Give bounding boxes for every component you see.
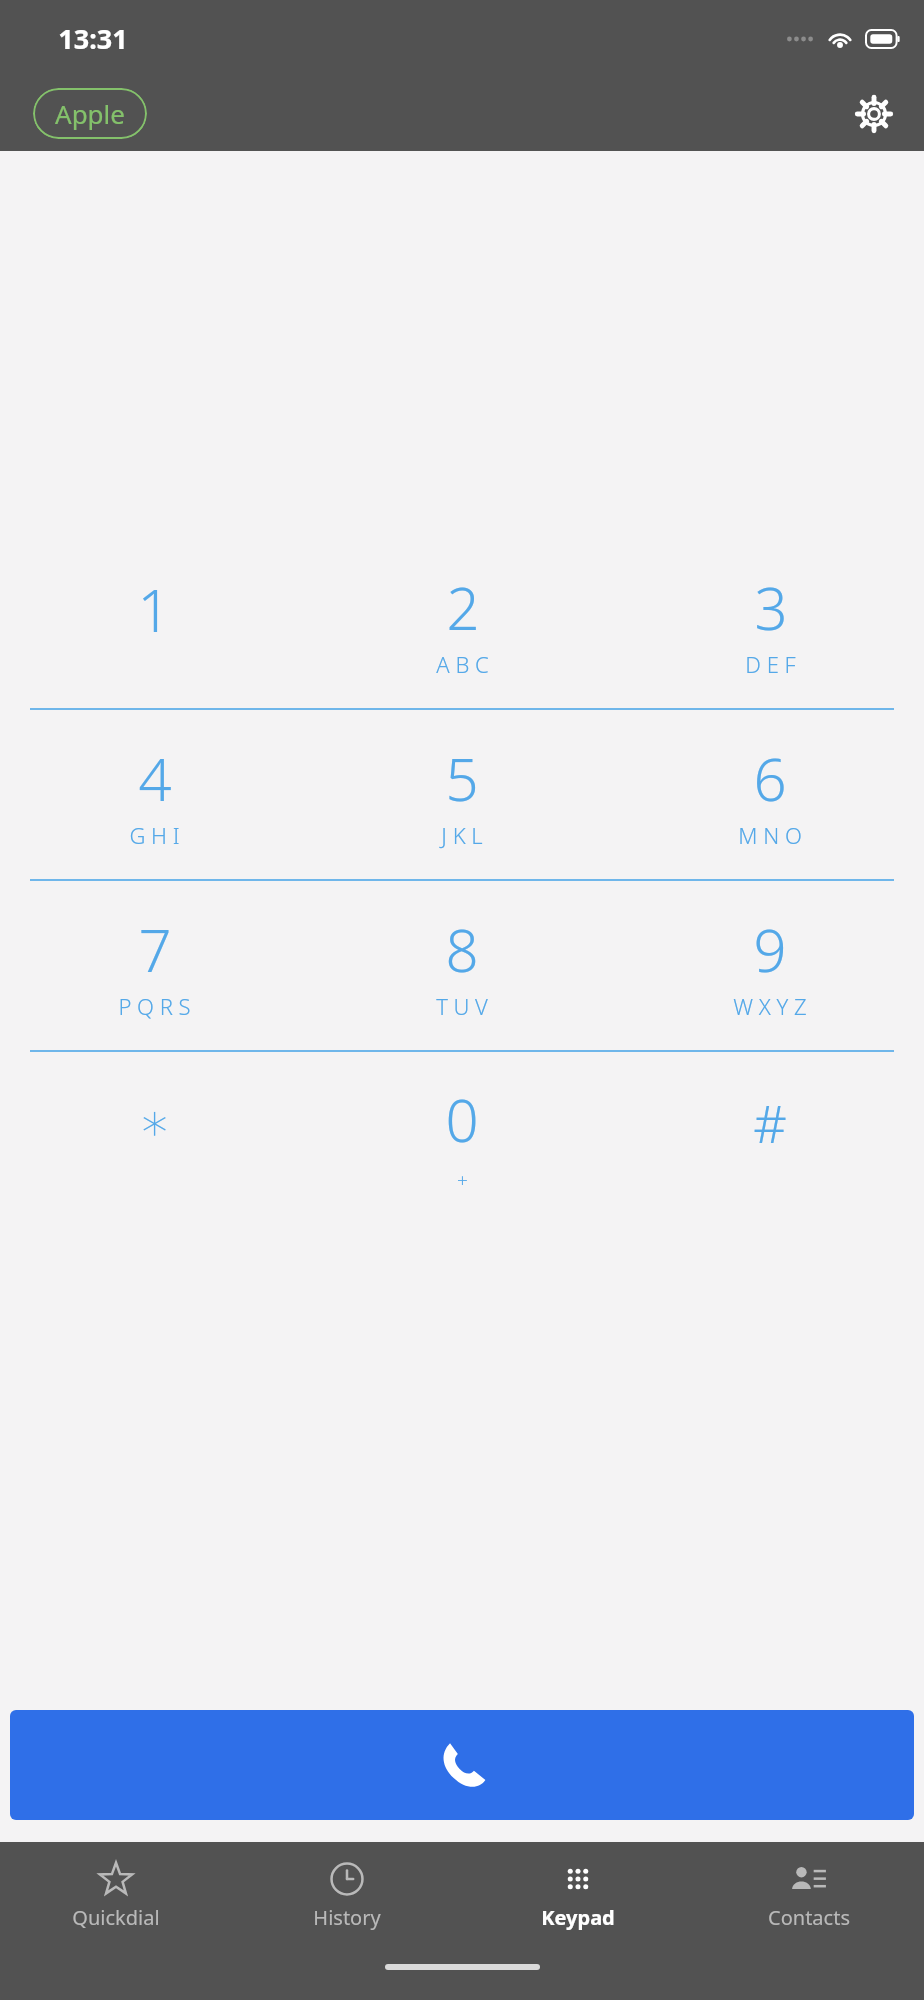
button[interactable]: Apple <box>33 88 147 139</box>
staticText: # <box>753 1087 787 1158</box>
staticText: 7 <box>138 910 172 989</box>
staticText: M N O <box>738 820 802 850</box>
staticText: 6 <box>753 739 787 818</box>
button[interactable]: Quickdial <box>0 1842 231 1950</box>
staticText: 8 <box>445 910 479 989</box>
staticText: Keypad <box>541 1904 615 1931</box>
button[interactable]: 9 <box>616 881 924 1050</box>
staticText: Apple <box>55 96 125 131</box>
button[interactable]: 1 <box>0 539 308 708</box>
staticText: 4 <box>138 739 172 818</box>
staticText: D E F <box>745 649 796 679</box>
button[interactable]: # <box>616 1052 924 1221</box>
button[interactable]: History <box>231 1842 462 1950</box>
staticText: 5 <box>445 739 479 818</box>
staticText: 9 <box>753 910 787 989</box>
button[interactable]: 4 <box>0 710 308 879</box>
staticText: Quickdial <box>72 1904 160 1931</box>
staticText: G H I <box>129 820 180 850</box>
button[interactable]: 6 <box>616 710 924 879</box>
button[interactable]: 5 <box>308 710 616 879</box>
button[interactable]: ∗ <box>0 1052 308 1221</box>
button[interactable]: 3 <box>616 539 924 708</box>
staticText: 0 <box>445 1080 479 1159</box>
button[interactable]: 2 <box>308 539 616 708</box>
staticText: J K L <box>441 820 483 850</box>
button[interactable]: 0 <box>308 1052 616 1221</box>
staticText: 1 <box>137 570 171 649</box>
staticText: P Q R S <box>118 991 191 1021</box>
staticText: 13:31 <box>58 20 128 57</box>
staticText: 3 <box>754 568 788 647</box>
button[interactable]: Settings <box>844 84 904 144</box>
staticText: ∗ <box>138 1092 171 1153</box>
button[interactable]: 7 <box>0 881 308 1050</box>
button[interactable]: Call <box>10 1710 914 1820</box>
staticText: W X Y Z <box>733 991 807 1021</box>
staticText: 2 <box>446 568 480 647</box>
staticText: + <box>457 1167 468 1193</box>
staticText: A B C <box>436 649 489 679</box>
button[interactable]: Keypad <box>462 1842 693 1950</box>
staticText: T U V <box>436 991 488 1021</box>
button[interactable]: 8 <box>308 881 616 1050</box>
button[interactable]: Contacts <box>693 1842 924 1950</box>
staticText: History <box>313 1904 381 1931</box>
staticText: Contacts <box>768 1904 850 1931</box>
